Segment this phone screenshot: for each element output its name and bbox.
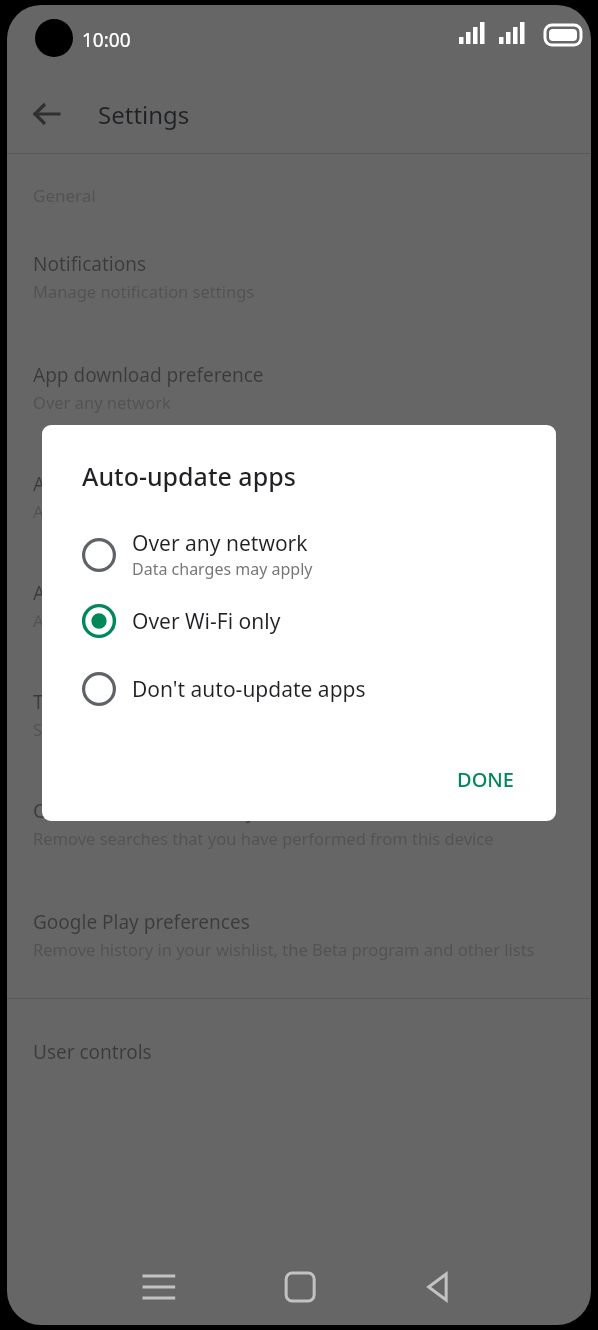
button[interactable]: Auto-play videos — [7, 566, 591, 645]
button[interactable]: DONE — [441, 756, 530, 803]
staticText: 10:00 — [82, 27, 131, 53]
staticText: Clear local search history — [33, 798, 256, 824]
staticText: Auto-update apps — [82, 459, 296, 493]
staticText: Remove searches that you have performed … — [33, 827, 494, 849]
staticText: DONE — [457, 766, 514, 793]
button[interactable]: Over any network — [42, 519, 556, 590]
staticText: Data charges may apply — [132, 558, 313, 580]
button[interactable]: App download preference — [7, 348, 591, 427]
button[interactable]: Clear local search history — [7, 784, 591, 863]
staticText: Settings — [98, 98, 190, 131]
button[interactable]: Theme — [7, 675, 591, 754]
staticText: Auto-update apps — [33, 471, 193, 497]
staticText: User controls — [33, 1039, 152, 1065]
button[interactable]: Back — [21, 89, 71, 139]
staticText: Over any network — [33, 391, 171, 413]
staticText: General — [33, 184, 96, 207]
button[interactable]: Over Wi-Fi only — [42, 594, 556, 648]
staticText: Remove history in your wishlist, the Bet… — [33, 938, 535, 960]
staticText: Auto-play videos — [33, 580, 181, 606]
staticText: Auto-update apps over Wi-Fi only — [33, 500, 290, 522]
button[interactable]: Don't auto-update apps — [42, 662, 556, 716]
staticText: App download preference — [33, 362, 264, 388]
staticText: Theme — [33, 689, 95, 715]
staticText: Notifications — [33, 251, 147, 277]
staticText: System default — [33, 718, 149, 740]
button[interactable]: Notifications — [7, 237, 591, 316]
button[interactable]: Google Play preferences — [7, 895, 591, 974]
staticText: Manage notification settings — [33, 280, 255, 302]
staticText: Don't auto-update apps — [132, 675, 366, 704]
staticText: Over any network — [132, 529, 308, 558]
staticText: Auto-play videos over Wi-Fi only — [33, 609, 279, 631]
staticText: Google Play preferences — [33, 909, 250, 935]
staticText: Over Wi-Fi only — [132, 607, 281, 636]
button[interactable]: Auto-update apps — [7, 457, 591, 536]
